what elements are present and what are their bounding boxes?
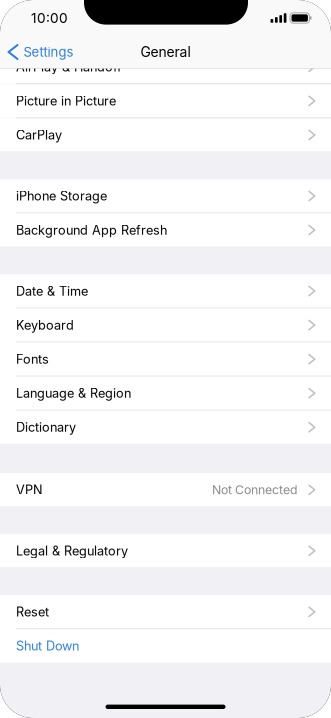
button[interactable]: Settings <box>0 41 73 63</box>
staticText: Dictionary <box>16 420 76 435</box>
staticText: Fonts <box>16 351 49 367</box>
button[interactable]: Picture in Picture <box>0 84 331 117</box>
staticText: Not Connected <box>212 482 298 497</box>
staticText: General <box>140 44 190 60</box>
staticText: CarPlay <box>16 127 62 143</box>
staticText: Background App Refresh <box>16 222 167 238</box>
button[interactable]: Legal & Regulatory <box>0 534 331 567</box>
button[interactable]: Language & Region <box>0 377 331 410</box>
button[interactable]: Fonts <box>0 343 331 376</box>
staticText: Picture in Picture <box>16 93 116 109</box>
staticText: Legal & Regulatory <box>16 543 128 558</box>
button[interactable]: Shut Down <box>0 629 331 662</box>
button[interactable]: Background App Refresh <box>0 213 331 246</box>
button[interactable]: CarPlay <box>0 118 331 151</box>
button[interactable]: Date & Time <box>0 274 331 307</box>
staticText: Shut Down <box>16 638 79 653</box>
button[interactable]: Reset <box>0 595 331 628</box>
staticText: AirPlay & Handoff <box>16 59 122 74</box>
staticText: VPN <box>16 482 43 497</box>
staticText: Date & Time <box>16 283 88 299</box>
button[interactable]: VPN <box>0 473 331 506</box>
button[interactable]: iPhone Storage <box>0 179 331 212</box>
button[interactable]: Keyboard <box>0 309 331 342</box>
staticText: Reset <box>16 604 49 619</box>
staticText: Settings <box>23 44 73 60</box>
staticText: Keyboard <box>16 317 74 333</box>
button[interactable]: AirPlay & Handoff <box>0 50 331 83</box>
button[interactable]: Dictionary <box>0 411 331 444</box>
staticText: Language & Region <box>16 385 131 401</box>
staticText: iPhone Storage <box>16 188 107 204</box>
staticText: 10:00 <box>31 10 68 26</box>
